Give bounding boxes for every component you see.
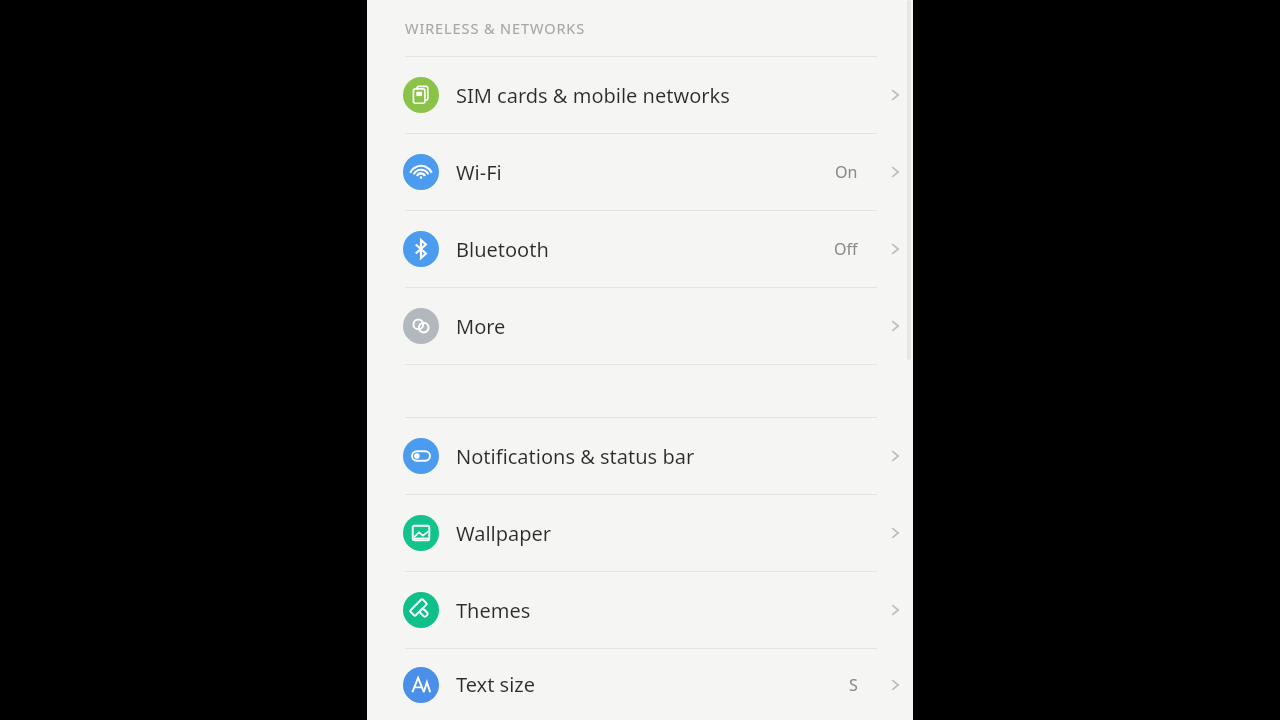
staticText: Notifications & status bar (456, 443, 877, 470)
staticText: Themes (456, 597, 877, 624)
button[interactable]: Wallpaper (367, 495, 913, 571)
staticText: More (456, 313, 877, 340)
button[interactable]: More (367, 288, 913, 364)
button[interactable]: Text size (367, 649, 913, 720)
button[interactable]: SIM cards & mobile networks (367, 57, 913, 133)
staticText: Bluetooth (456, 236, 834, 263)
button[interactable]: Notifications & status bar (367, 418, 913, 494)
staticText: Wi-Fi (456, 159, 835, 186)
button[interactable]: Bluetooth (367, 211, 913, 287)
staticText: S (849, 674, 858, 696)
staticText: SIM cards & mobile networks (456, 82, 877, 109)
staticText: WIRELESS & NETWORKS (405, 18, 586, 38)
button[interactable]: Wi-Fi (367, 134, 913, 210)
button[interactable]: Themes (367, 572, 913, 648)
staticText: Text size (456, 671, 849, 698)
staticText: On (835, 161, 858, 183)
staticText: Off (834, 238, 858, 260)
staticText: Wallpaper (456, 520, 877, 547)
